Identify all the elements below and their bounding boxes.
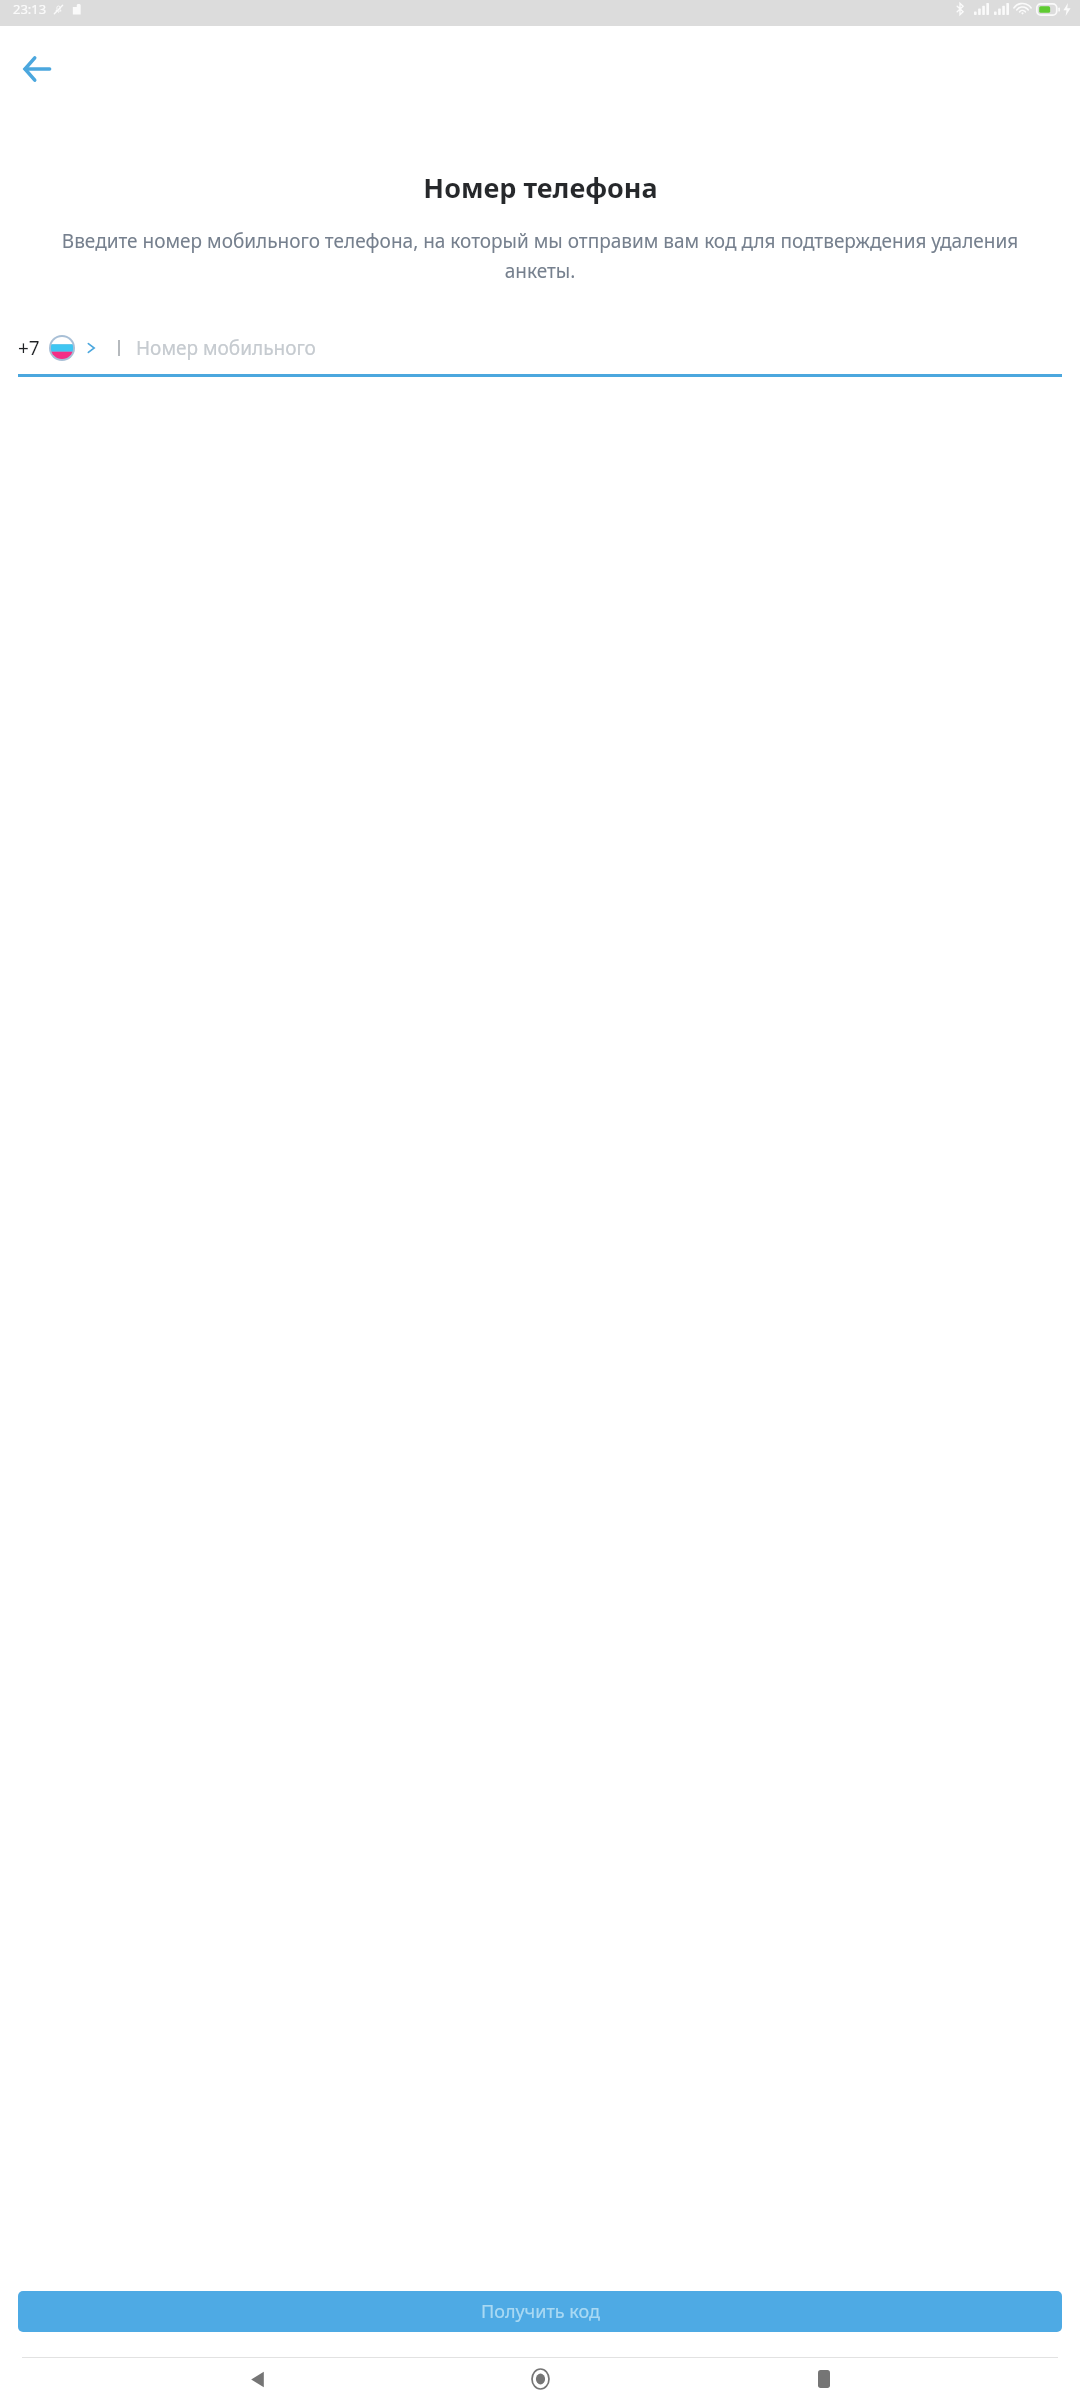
staticText: Введите номер мобильного телефона, на ко…: [34, 228, 1046, 283]
staticText: +7: [18, 335, 40, 361]
staticText: 23:13: [13, 0, 47, 18]
staticText: Получить код: [481, 2299, 600, 2324]
staticText: Номер телефона: [423, 169, 658, 206]
button[interactable]: Назад: [10, 42, 64, 96]
button[interactable]: Получить код: [18, 2291, 1062, 2332]
button[interactable]: Номер мобильного: [136, 335, 1062, 361]
staticText: Номер мобильного: [136, 335, 316, 361]
button[interactable]: Home: [513, 2358, 567, 2400]
button[interactable]: Recents: [797, 2358, 851, 2400]
button[interactable]: +7: [18, 335, 102, 361]
button[interactable]: Back: [230, 2358, 284, 2400]
